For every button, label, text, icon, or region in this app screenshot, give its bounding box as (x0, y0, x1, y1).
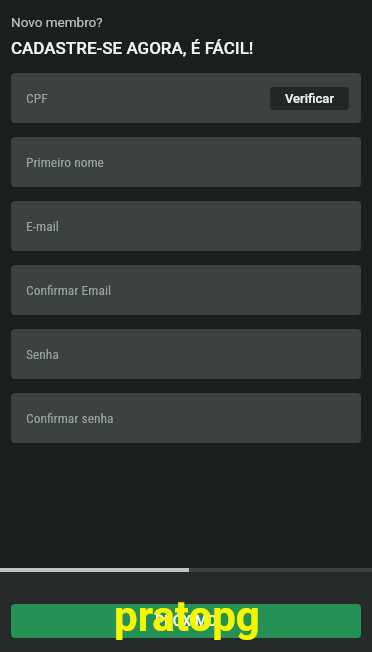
button[interactable]: Confirmar Email (11, 265, 361, 315)
button[interactable]: Primeiro nome (11, 137, 361, 187)
staticText: Senha (26, 346, 59, 362)
button[interactable]: E-mail (11, 201, 361, 251)
staticText: Primeiro nome (26, 154, 104, 170)
staticText: CPF (26, 90, 48, 106)
staticText: Novo membro? (11, 14, 103, 30)
button[interactable]: CPF (11, 73, 361, 123)
staticText: Confirmar senha (26, 410, 114, 426)
button[interactable]: PRÓXIMO (11, 604, 361, 638)
staticText: CADASTRE-SE AGORA, É FÁCIL! (11, 38, 254, 58)
staticText: E-mail (26, 218, 59, 234)
staticText: Confirmar Email (26, 282, 112, 298)
staticText: PRÓXIMO (155, 613, 217, 629)
button[interactable]: Confirmar senha (11, 393, 361, 443)
button[interactable]: Verificar (270, 87, 349, 110)
staticText: Verificar (285, 91, 334, 106)
staticText: pratopg (114, 592, 260, 641)
button[interactable]: Senha (11, 329, 361, 379)
